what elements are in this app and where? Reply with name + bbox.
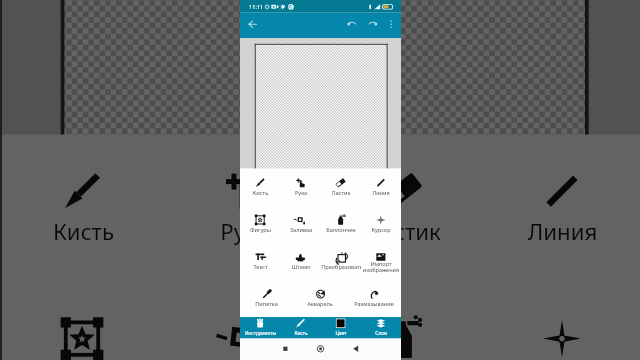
button[interactable]: Ластик <box>321 169 361 206</box>
button[interactable]: Акварель <box>293 280 347 317</box>
button[interactable]: Цвет <box>321 317 361 339</box>
staticText: Кисть <box>281 330 321 337</box>
staticText: Кисть <box>240 189 281 197</box>
button[interactable]: Фигуры <box>2 283 165 360</box>
button[interactable]: Преобразовать <box>321 243 361 280</box>
staticText: Линия <box>361 189 401 197</box>
button[interactable]: Текст <box>240 243 281 280</box>
staticText: Ластик <box>321 189 361 197</box>
staticText: Кисть <box>2 216 165 248</box>
button[interactable]: Линия <box>361 169 401 206</box>
button[interactable]: Пипетка <box>240 280 293 317</box>
staticText: Штамп <box>281 263 321 271</box>
button[interactable]: Кисть <box>281 317 321 339</box>
button[interactable]: Баллончик <box>321 206 361 243</box>
button[interactable]: Штамп <box>281 243 321 280</box>
staticText: Ластик <box>324 216 483 248</box>
staticText: Рука <box>281 189 321 197</box>
button[interactable]: Ластик <box>324 136 483 283</box>
button[interactable]: Рука <box>281 169 321 206</box>
button[interactable]: Размазывание <box>347 280 401 317</box>
staticText: Цвет <box>321 330 361 337</box>
staticText: Размазывание <box>347 300 401 308</box>
staticText: Фигуры <box>240 226 281 234</box>
button[interactable]: Инструменты <box>240 317 281 339</box>
button[interactable]: Кисть <box>240 169 281 206</box>
button[interactable]: Фигуры <box>240 206 281 243</box>
staticText: Баллончик <box>321 226 361 234</box>
staticText: Пипетка <box>240 300 293 308</box>
staticText: Рука <box>165 216 324 248</box>
button[interactable]: Рука <box>165 136 324 283</box>
button[interactable]: Заливка <box>281 206 321 243</box>
button[interactable]: Слои <box>361 317 401 339</box>
staticText: Акварель <box>293 300 347 308</box>
staticText: Заливка <box>281 226 321 234</box>
staticText: Курсор <box>361 226 401 234</box>
staticText: 11:11 <box>249 3 264 11</box>
staticText: Импорт изображения <box>361 260 401 274</box>
button[interactable]: Заливка <box>165 283 324 360</box>
staticText: Слои <box>361 330 401 337</box>
staticText: Инструменты <box>240 330 281 337</box>
button[interactable]: Линия <box>483 136 640 283</box>
button[interactable]: Курсор <box>483 283 640 360</box>
button[interactable]: Кисть <box>2 136 165 283</box>
staticText: Линия <box>483 216 640 248</box>
staticText: Текст <box>240 263 281 271</box>
staticText: Преобразовать <box>321 263 361 271</box>
button[interactable]: Баллончик <box>324 283 483 360</box>
button[interactable]: Импорт изображения <box>361 243 401 280</box>
button[interactable]: Курсор <box>361 206 401 243</box>
